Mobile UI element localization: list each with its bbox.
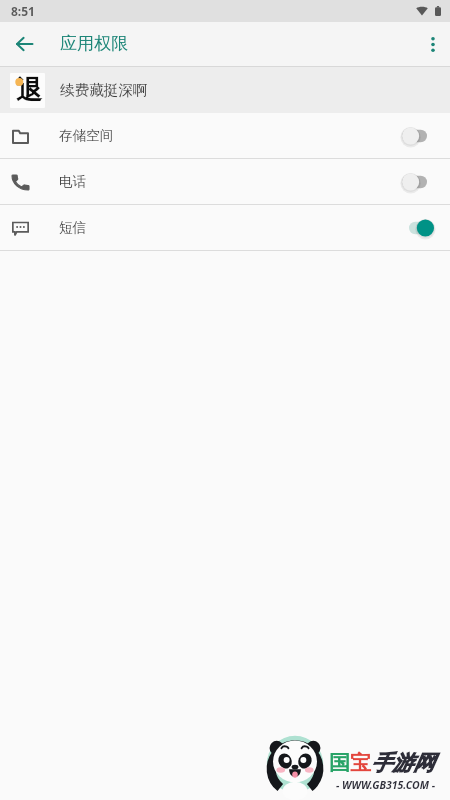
button[interactable]: 存储空间 xyxy=(0,113,450,158)
staticText: 续费藏挺深啊 xyxy=(60,81,148,99)
button[interactable]: Permission enabled xyxy=(390,208,436,248)
button[interactable]: Back xyxy=(7,27,41,61)
staticText: 存储空间 xyxy=(59,127,114,144)
staticText: 8:51 xyxy=(11,3,35,19)
staticText: - WWW.GB315.COM - xyxy=(336,778,436,792)
button[interactable]: 短信 xyxy=(0,205,450,250)
staticText: 退 xyxy=(16,74,42,107)
button[interactable]: More options xyxy=(418,29,448,59)
staticText: 应用权限 xyxy=(60,33,129,55)
button[interactable]: Permission disabled xyxy=(390,116,436,156)
button[interactable]: 电话 xyxy=(0,159,450,204)
staticText: 国 xyxy=(329,750,350,776)
staticText: 电话 xyxy=(59,173,87,190)
staticText: 宝 xyxy=(350,750,371,776)
staticText: 手游网 xyxy=(371,750,434,776)
button[interactable]: Permission disabled xyxy=(390,162,436,202)
staticText: 短信 xyxy=(59,219,87,236)
